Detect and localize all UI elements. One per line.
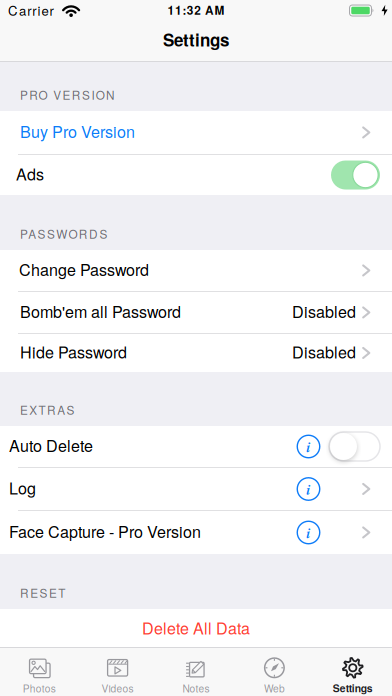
staticText: Disabled: [292, 299, 356, 323]
staticText: Settings: [333, 681, 373, 695]
button[interactable]: Log: [0, 468, 392, 510]
button[interactable]: Bomb'em all Password: [0, 292, 392, 333]
button[interactable]: Photos: [0, 648, 78, 696]
button[interactable]: More Info: [297, 435, 320, 458]
staticText: Carrier: [8, 0, 54, 19]
button[interactable]: Change Password: [0, 250, 392, 291]
button[interactable]: Videos: [78, 648, 157, 696]
staticText: Bomb'em all Password: [20, 299, 181, 323]
staticText: Photos: [23, 681, 56, 695]
button[interactable]: More Info: [297, 521, 320, 544]
button[interactable]: Notes: [157, 648, 235, 696]
staticText: Ads: [16, 162, 44, 185]
staticText: i: [306, 480, 310, 499]
staticText: EXTRAS: [20, 401, 74, 418]
staticText: Face Capture - Pro Version: [9, 519, 201, 543]
staticText: Videos: [102, 681, 134, 695]
button[interactable]: Delete All Data: [0, 609, 392, 647]
staticText: Delete All Data: [142, 616, 250, 639]
button[interactable]: Face Capture - Pro Version: [0, 511, 392, 554]
staticText: PASSWORDS: [20, 225, 107, 242]
staticText: i: [306, 523, 310, 543]
staticText: PRO VERSION: [20, 86, 115, 103]
staticText: Log: [9, 476, 36, 499]
staticText: Notes: [182, 681, 209, 695]
staticText: Auto Delete: [9, 433, 93, 457]
staticText: i: [306, 437, 310, 457]
staticText: 11:32 AM: [168, 2, 224, 18]
button[interactable]: Ads: [331, 160, 380, 189]
button[interactable]: Web: [235, 648, 314, 696]
staticText: Settings: [163, 27, 229, 52]
staticText: Buy Pro Version: [20, 119, 135, 143]
button[interactable]: Buy Pro Version: [0, 111, 392, 154]
staticText: Change Password: [19, 257, 149, 281]
staticText: Web: [264, 681, 285, 695]
staticText: Hide Password: [20, 340, 127, 363]
button[interactable]: More Info: [297, 477, 320, 500]
button[interactable]: Settings: [314, 648, 392, 696]
button[interactable]: Auto Delete: [329, 432, 380, 461]
button[interactable]: Hide Password: [0, 334, 392, 372]
staticText: Disabled: [292, 340, 356, 363]
staticText: RESET: [20, 584, 65, 601]
